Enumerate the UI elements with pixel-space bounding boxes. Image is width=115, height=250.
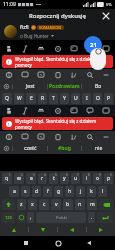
button[interactable]: Link	[53, 44, 63, 54]
button[interactable]: Y	[60, 93, 69, 104]
button[interactable]: Link	[53, 106, 63, 116]
button[interactable]: m	[87, 199, 97, 210]
staticText: x	[31, 201, 34, 208]
button[interactable]: Bo	[82, 81, 115, 92]
button[interactable]: x	[28, 199, 37, 210]
button[interactable]: i	[82, 173, 91, 184]
button[interactable]: Left	[58, 224, 86, 235]
button[interactable]: Home	[53, 238, 63, 248]
button[interactable]: b	[63, 199, 73, 210]
button[interactable]: e	[26, 173, 36, 184]
button[interactable]: U	[71, 93, 80, 104]
button[interactable]: Strikethrough	[36, 106, 46, 116]
button[interactable]: nie	[82, 143, 115, 154]
button[interactable]: z	[17, 199, 26, 210]
button[interactable]: Quote	[85, 106, 95, 116]
button[interactable]: Recents	[21, 238, 31, 248]
button[interactable]: Voice input	[0, 81, 12, 92]
button[interactable]: More	[101, 132, 111, 142]
button[interactable]: W	[14, 93, 24, 104]
button[interactable]: Space	[36, 212, 86, 223]
button[interactable]: Code	[101, 44, 111, 54]
button[interactable]: GIF	[36, 132, 46, 142]
button[interactable]: Code	[101, 106, 111, 116]
staticText: r	[41, 175, 44, 182]
button[interactable]: Italic	[20, 44, 30, 54]
button[interactable]: Theme	[4, 70, 14, 80]
button[interactable]: Italic	[20, 106, 30, 116]
staticText: i	[86, 175, 88, 182]
button[interactable]: !	[2, 55, 113, 68]
button[interactable]: GIF	[36, 70, 46, 80]
button[interactable]: n	[75, 199, 85, 210]
button[interactable]: Theme	[4, 132, 14, 142]
button[interactable]: Clipboard	[53, 132, 63, 142]
button[interactable]: Pozdrawiam	[48, 81, 81, 92]
button[interactable]: Notification badge	[84, 36, 102, 54]
button[interactable]: 123	[2, 212, 15, 223]
button[interactable]: .	[88, 212, 95, 223]
button[interactable]: Down	[29, 224, 57, 235]
staticText: Pozdrawiam	[49, 83, 80, 90]
button[interactable]: a	[9, 186, 19, 197]
button[interactable]: j	[76, 186, 85, 197]
button[interactable]: Bold	[4, 44, 14, 54]
button[interactable]: o	[93, 173, 102, 184]
button[interactable]: Emoji	[17, 212, 25, 223]
button[interactable]: c	[39, 199, 49, 210]
button[interactable]: Q	[2, 93, 12, 104]
staticText: Y	[63, 95, 66, 102]
button[interactable]: More options	[90, 48, 106, 70]
button[interactable]: !	[2, 117, 113, 130]
button[interactable]: p	[104, 173, 113, 184]
button[interactable]: Sticker	[20, 132, 30, 142]
button[interactable]: cześć	[13, 143, 47, 154]
button[interactable]: fizfi	[0, 23, 115, 40]
button[interactable]: Jest	[13, 81, 47, 92]
button[interactable]: Translate	[69, 132, 79, 142]
button[interactable]: Translate	[69, 70, 79, 80]
button[interactable]: I	[82, 93, 91, 104]
button[interactable]: g	[54, 186, 63, 197]
button[interactable]: Enter	[97, 212, 113, 223]
button[interactable]: Strikethrough	[36, 44, 46, 54]
button[interactable]: #bug	[48, 143, 81, 154]
staticText: Rozpocznij dyskusję	[29, 12, 86, 20]
button[interactable]: P	[104, 93, 113, 104]
button[interactable]: O	[93, 93, 102, 104]
button[interactable]: Right	[87, 224, 115, 235]
button[interactable]: Search	[85, 70, 95, 80]
button[interactable]: Image	[69, 106, 79, 116]
button[interactable]: Backspace	[99, 199, 113, 210]
button[interactable]: h	[65, 186, 74, 197]
button[interactable]: Voice input	[0, 143, 12, 154]
button[interactable]: v	[51, 199, 61, 210]
button[interactable]: w	[14, 173, 24, 184]
button[interactable]: Back	[84, 238, 94, 248]
button[interactable]: E	[26, 93, 36, 104]
button[interactable]: Image	[69, 44, 79, 54]
button[interactable]: Sticker	[20, 70, 30, 80]
button[interactable]: T	[49, 93, 58, 104]
button[interactable]: Shift	[2, 199, 15, 210]
button[interactable]: f	[43, 186, 52, 197]
button[interactable]: Clipboard	[53, 70, 63, 80]
button[interactable]: s	[21, 186, 30, 197]
button[interactable]: Up	[0, 224, 28, 235]
staticText: n	[78, 201, 82, 208]
button[interactable]: d	[32, 186, 41, 197]
button[interactable]: r	[38, 173, 47, 184]
button[interactable]: k	[87, 186, 96, 197]
button[interactable]: Close	[101, 11, 111, 21]
button[interactable]: y	[60, 173, 69, 184]
button[interactable]: u	[71, 173, 80, 184]
button[interactable]: t	[49, 173, 58, 184]
button[interactable]: l	[98, 186, 107, 197]
button[interactable]: R	[38, 93, 47, 104]
button[interactable]: Bold	[4, 106, 14, 116]
button[interactable]: ,	[27, 212, 34, 223]
button[interactable]: Search	[85, 132, 95, 142]
button[interactable]: More	[101, 70, 111, 80]
button[interactable]: q	[2, 173, 12, 184]
button[interactable]: Quote	[85, 44, 95, 54]
